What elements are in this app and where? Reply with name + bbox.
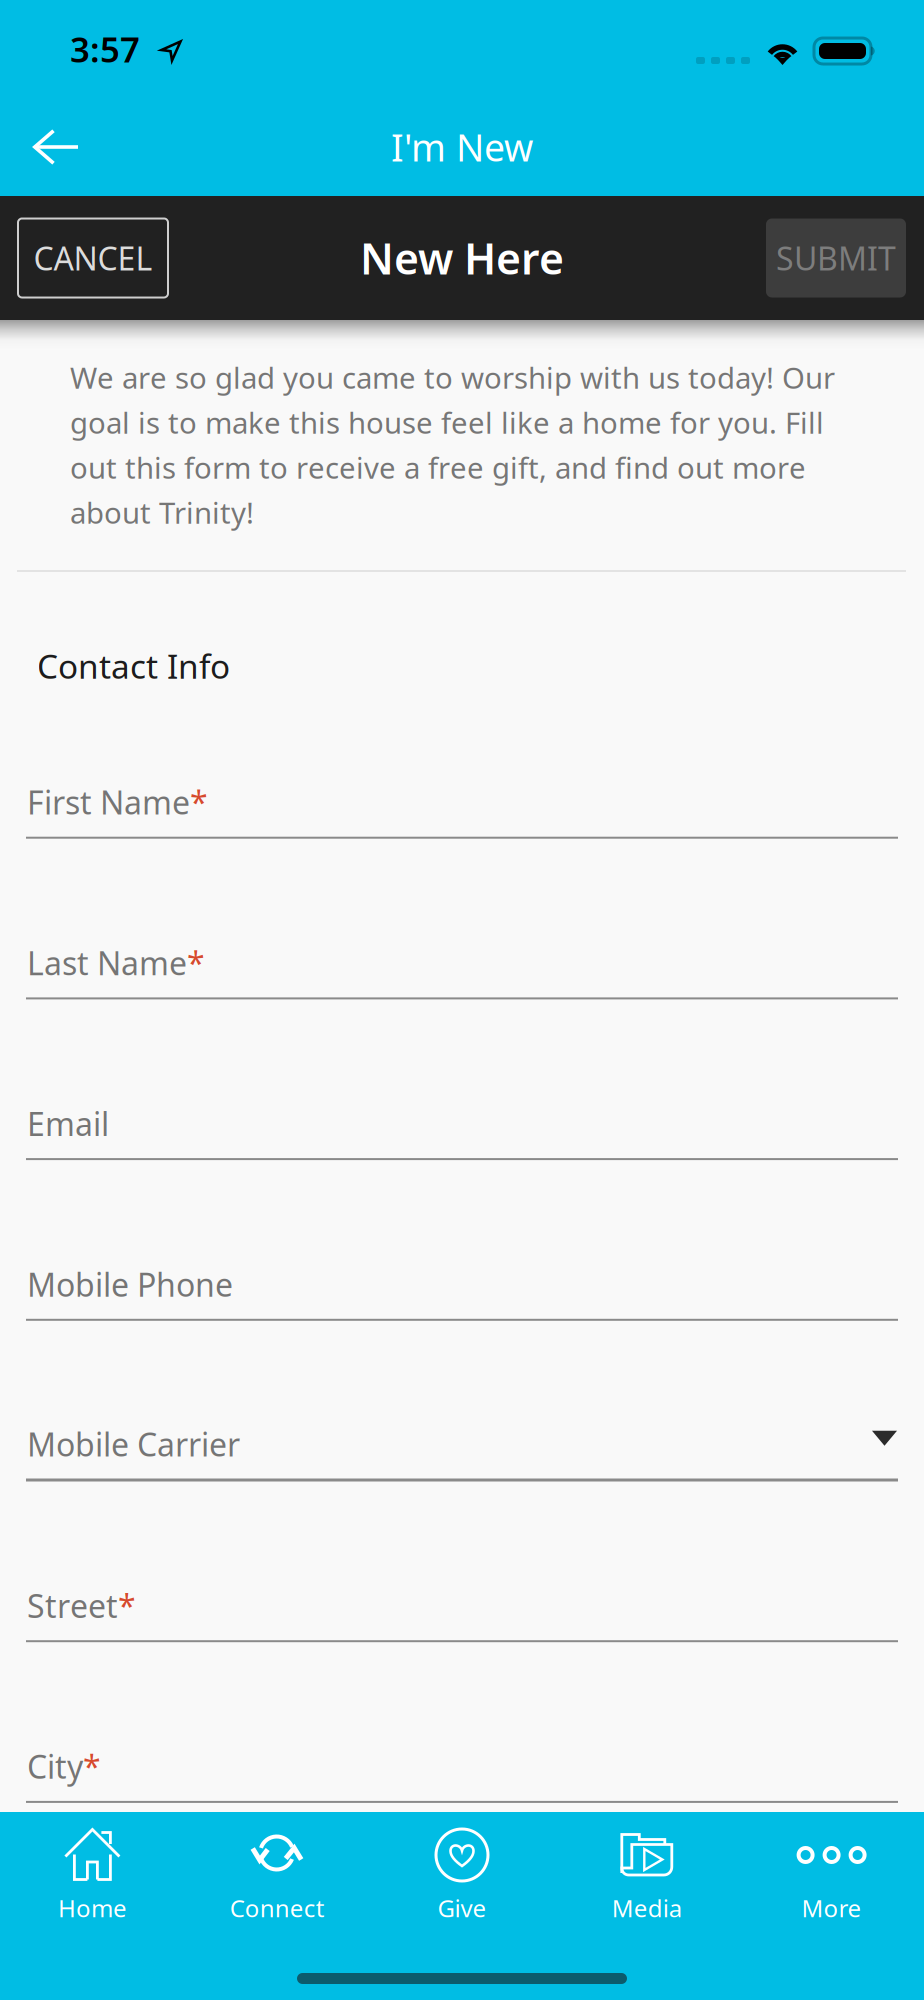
button[interactable]: Connect: [185, 1808, 370, 1996]
staticText: Email: [27, 1102, 109, 1145]
staticText: I'm New: [391, 122, 533, 172]
staticText: *: [83, 1745, 101, 1788]
staticText: Contact Info: [37, 644, 230, 688]
button[interactable]: Mobile Phone: [0, 1160, 924, 1321]
staticText: *: [190, 781, 208, 823]
staticText: Give: [437, 1892, 486, 1924]
button[interactable]: Media: [554, 1808, 739, 1996]
button[interactable]: City: [0, 1642, 924, 1803]
staticText: More: [802, 1892, 862, 1924]
staticText: We are so glad you came to worship with …: [70, 358, 835, 532]
staticText: Connect: [230, 1892, 325, 1924]
button[interactable]: Home: [0, 1808, 185, 1996]
staticText: SUBMIT: [776, 237, 896, 279]
staticText: Home: [58, 1892, 127, 1924]
staticText: *: [118, 1584, 136, 1627]
button[interactable]: Back: [0, 98, 119, 196]
button[interactable]: Last Name: [0, 839, 924, 999]
button[interactable]: SUBMIT: [766, 218, 906, 297]
staticText: Mobile Phone: [27, 1263, 233, 1306]
staticText: Street: [27, 1584, 118, 1627]
staticText: CANCEL: [33, 237, 152, 279]
staticText: 3:57: [70, 26, 140, 72]
button[interactable]: Email: [0, 999, 924, 1160]
button[interactable]: More: [739, 1808, 924, 1996]
button[interactable]: Street: [0, 1481, 924, 1642]
button[interactable]: CANCEL: [18, 218, 168, 297]
staticText: Mobile Carrier: [27, 1423, 240, 1465]
staticText: First Name: [27, 781, 190, 823]
staticText: Media: [612, 1892, 682, 1924]
button[interactable]: Mobile Carrier: [0, 1321, 924, 1481]
staticText: Last Name: [27, 942, 187, 984]
staticText: New Here: [360, 230, 564, 286]
staticText: *: [187, 942, 205, 984]
button[interactable]: First Name: [0, 678, 924, 839]
staticText: City: [27, 1745, 83, 1788]
button[interactable]: Give: [370, 1808, 554, 1996]
